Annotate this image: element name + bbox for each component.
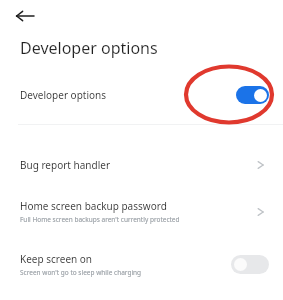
staticText: Developer options <box>20 88 236 102</box>
staticText: Screen won't go to sleep while charging <box>20 268 142 277</box>
button[interactable]: Bug report handler <box>0 151 283 179</box>
button[interactable]: Keep screen on toggle, off <box>231 255 269 274</box>
staticText: Full Home screen backups aren't currentl… <box>20 215 180 224</box>
staticText: Home screen backup password <box>20 199 167 213</box>
button[interactable]: Developer options toggle, on <box>236 86 269 104</box>
staticText: Bug report handler <box>20 158 255 172</box>
staticText: Keep screen on <box>20 252 93 266</box>
button[interactable]: Back <box>10 1 40 31</box>
button[interactable]: Keep screen on <box>0 250 283 279</box>
button[interactable]: Home screen backup password <box>0 197 283 226</box>
button[interactable]: Developer options <box>0 77 283 113</box>
staticText: Developer options <box>20 37 158 59</box>
